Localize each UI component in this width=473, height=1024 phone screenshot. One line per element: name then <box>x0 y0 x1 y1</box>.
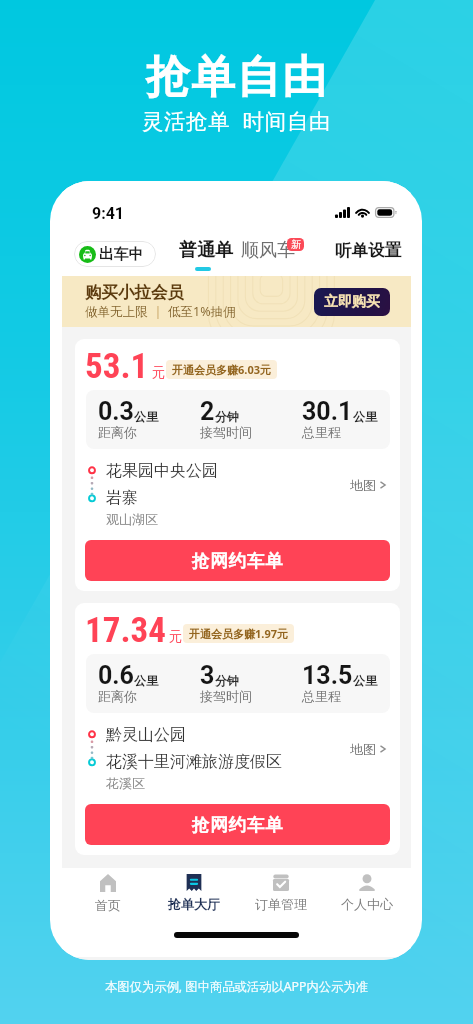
staticText: 普通单 <box>179 239 233 262</box>
staticText: 接驾时间 <box>200 688 252 704</box>
staticText: 2 <box>200 397 215 426</box>
button[interactable]: 出车中 <box>74 241 156 267</box>
staticText: 53.1 <box>85 346 149 387</box>
staticText: 开通会员多赚6.03元 <box>172 362 271 377</box>
staticText: 花溪区 <box>106 775 145 791</box>
staticText: 地图 <box>350 741 376 757</box>
staticText: 30.1 <box>302 397 353 426</box>
button[interactable]: 首页 <box>65 868 151 916</box>
button[interactable]: 普通单 <box>175 235 237 266</box>
staticText: 元 <box>152 364 166 381</box>
staticText: 3 <box>200 661 215 690</box>
staticText: 购买小拉会员 <box>85 282 184 303</box>
staticText: 距离你 <box>98 688 137 704</box>
staticText: 灵活抢单 时间自由 <box>0 106 473 135</box>
staticText: 岩寨 <box>106 488 138 508</box>
button[interactable]: 地图 <box>346 473 390 497</box>
button[interactable]: 抢单大厅 <box>151 868 237 916</box>
button[interactable]: 听单设置 <box>332 236 404 265</box>
staticText: 公里 <box>134 673 158 688</box>
staticText: 听单设置 <box>335 240 401 261</box>
staticText: 公里 <box>134 409 158 424</box>
staticText: 公里 <box>353 409 377 424</box>
button[interactable]: 顺风车 <box>237 235 299 266</box>
staticText: 订单管理 <box>255 896 307 912</box>
staticText: 元 <box>169 628 183 645</box>
staticText: 新 <box>291 238 301 251</box>
button[interactable]: 抢网约车单 <box>85 540 390 581</box>
staticText: 抢网约车单 <box>192 814 284 836</box>
staticText: 低至1%抽佣 <box>168 303 236 320</box>
button[interactable]: 53.1 <box>75 339 400 591</box>
staticText: 黔灵山公园 <box>106 725 186 745</box>
staticText: 抢网约车单 <box>192 550 284 572</box>
staticText: 距离你 <box>98 424 137 440</box>
button[interactable]: 17.34 <box>75 603 400 855</box>
staticText: 花溪十里河滩旅游度假区 <box>106 752 282 772</box>
other: 首页 <box>100 874 116 892</box>
staticText: 9:41 <box>92 204 125 223</box>
staticText: 观山湖区 <box>106 511 158 527</box>
staticText: 花果园中央公园 <box>106 461 218 481</box>
staticText: 13.5 <box>302 661 353 690</box>
staticText: 立即购买 <box>324 293 380 311</box>
button[interactable]: 立即购买 <box>314 288 390 316</box>
staticText: 总里程 <box>302 424 341 440</box>
staticText: 公里 <box>353 673 377 688</box>
staticText: 个人中心 <box>341 896 393 912</box>
staticText: 顺风车 <box>241 239 295 262</box>
staticText: 抢单大厅 <box>168 896 220 912</box>
staticText: 总里程 <box>302 688 341 704</box>
other: 个人中心 <box>359 874 375 891</box>
staticText: 0.3 <box>98 397 134 426</box>
staticText: 分钟 <box>215 673 239 688</box>
other: 抢单大厅 <box>186 874 202 891</box>
staticText: 开通会员多赚1.97元 <box>189 626 288 641</box>
staticText: 出车中 <box>99 245 144 264</box>
button[interactable]: 个人中心 <box>324 868 410 916</box>
staticText: 本图仅为示例, 图中商品或活动以APP内公示为准 <box>0 978 473 995</box>
staticText: 做单无上限 <box>85 304 148 320</box>
other: 订单管理 <box>273 874 289 891</box>
staticText: 分钟 <box>215 409 239 424</box>
button[interactable]: 订单管理 <box>238 868 324 916</box>
staticText: 首页 <box>95 897 121 913</box>
staticText: 接驾时间 <box>200 424 252 440</box>
staticText: 0.6 <box>98 661 134 690</box>
staticText: | <box>148 303 168 320</box>
button[interactable]: 抢网约车单 <box>85 804 390 845</box>
button[interactable]: 购买小拉会员 <box>62 276 411 327</box>
button[interactable]: 地图 <box>346 737 390 761</box>
staticText: 地图 <box>350 477 376 493</box>
staticText: 抢单自由 <box>0 50 473 105</box>
staticText: 17.34 <box>85 610 166 651</box>
